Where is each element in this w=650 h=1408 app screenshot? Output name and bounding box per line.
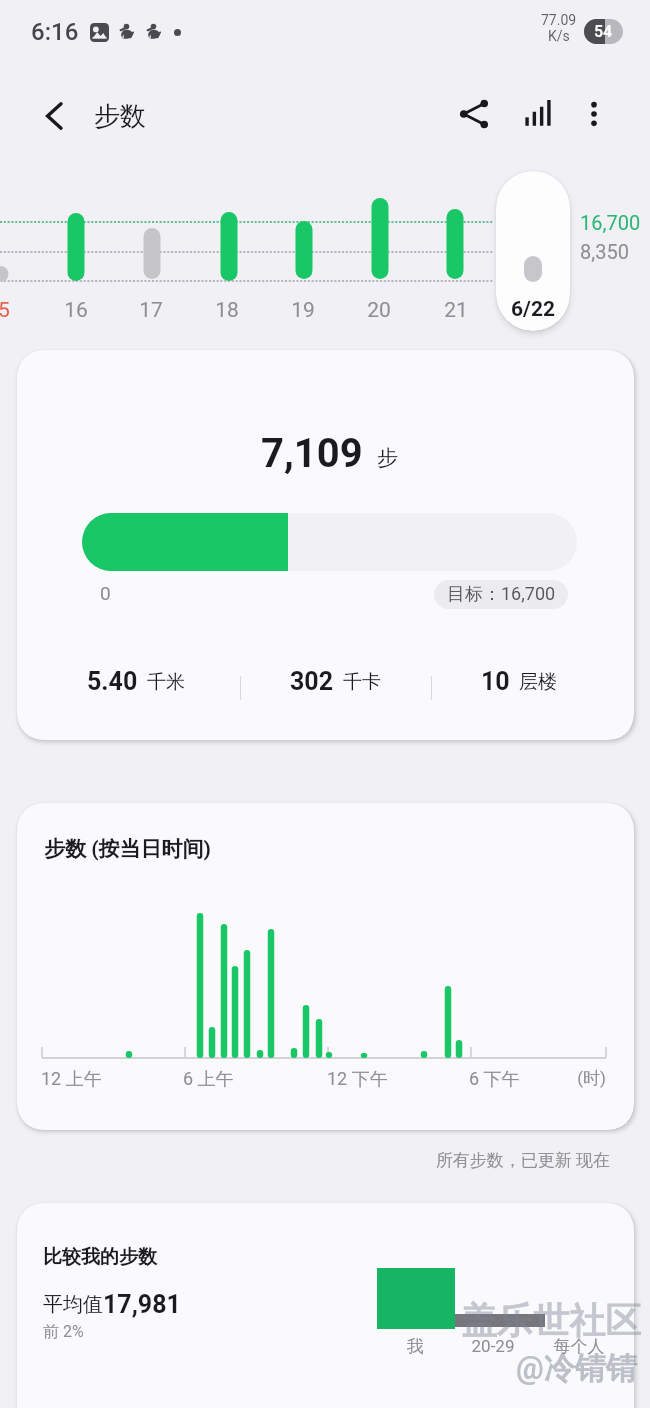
button[interactable]: 比较我的步数 bbox=[17, 1203, 634, 1408]
staticText: 所有步数，已更新 现在 bbox=[0, 1150, 610, 1171]
staticText: 6:16 bbox=[31, 18, 79, 46]
button[interactable]: 302 bbox=[240, 667, 431, 696]
button[interactable]: 5.40 bbox=[32, 667, 240, 696]
staticText: 步数 (按当日时间) bbox=[44, 836, 212, 862]
staticText: 盖乐世社区 bbox=[461, 1298, 641, 1343]
staticText: 8,350 bbox=[580, 240, 629, 263]
staticText: 7,109 bbox=[261, 430, 363, 477]
staticText: 302 bbox=[290, 667, 334, 696]
button[interactable]: 步数 (按当日时间) bbox=[17, 803, 634, 1130]
button[interactable]: Share bbox=[446, 86, 502, 142]
staticText: 我 bbox=[370, 1336, 460, 1357]
staticText: (时) bbox=[506, 1068, 606, 1089]
staticText: 18 bbox=[197, 298, 257, 323]
button[interactable]: 7,109 bbox=[17, 350, 634, 740]
staticText: 平均值 bbox=[43, 1292, 103, 1317]
staticText: @冷锖锖 bbox=[516, 1349, 637, 1388]
staticText: 6 上午 bbox=[183, 1068, 234, 1091]
staticText: 千米 bbox=[147, 670, 185, 694]
staticText: 54 bbox=[594, 22, 613, 41]
staticText: 层楼 bbox=[519, 670, 557, 694]
staticText: 21 bbox=[426, 298, 486, 323]
staticText: 17,981 bbox=[103, 1290, 181, 1319]
staticText: 5.40 bbox=[87, 667, 138, 696]
staticText: 比较我的步数 bbox=[43, 1245, 157, 1269]
button[interactable]: More options bbox=[566, 86, 622, 142]
button[interactable]: Statistics bbox=[510, 86, 566, 142]
button[interactable]: Back bbox=[26, 88, 82, 144]
staticText: 千卡 bbox=[343, 670, 381, 694]
staticText: 20 bbox=[349, 298, 409, 323]
staticText: 6 下午 bbox=[469, 1068, 520, 1091]
staticText: 16,700 bbox=[580, 211, 641, 234]
staticText: 0 bbox=[100, 582, 111, 604]
staticText: 步数 bbox=[94, 100, 146, 133]
staticText: 6/22 bbox=[496, 297, 570, 322]
staticText: 前 2% bbox=[43, 1322, 84, 1342]
staticText: 12 下午 bbox=[327, 1068, 388, 1091]
staticText: 16 bbox=[46, 298, 106, 323]
staticText: 步 bbox=[377, 445, 398, 471]
button[interactable]: 10 bbox=[431, 667, 607, 696]
staticText: 10 bbox=[481, 667, 510, 696]
staticText: 20-29 bbox=[448, 1336, 538, 1356]
button[interactable]: 6/22 bbox=[496, 171, 570, 331]
staticText: 目标：16,700 bbox=[447, 583, 556, 606]
staticText: 77.09 bbox=[541, 12, 577, 28]
staticText: 每个人 bbox=[534, 1336, 624, 1357]
staticText: 5 bbox=[0, 298, 34, 323]
staticText: K/s bbox=[548, 28, 570, 44]
staticText: 19 bbox=[273, 298, 333, 323]
staticText: 17 bbox=[121, 298, 181, 323]
staticText: 12 上午 bbox=[41, 1068, 102, 1091]
